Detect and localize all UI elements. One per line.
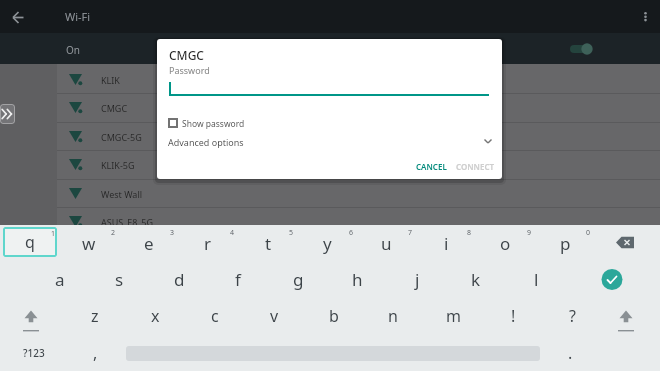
staticText: 5	[289, 228, 294, 238]
button[interactable]: n	[366, 297, 420, 334]
staticText: b	[329, 305, 339, 327]
staticText: j	[415, 268, 420, 291]
staticText: KLIK-5G	[101, 159, 135, 171]
button[interactable]: CMGC	[57, 93, 660, 121]
button[interactable]: CANCEL	[409, 157, 453, 176]
button[interactable]: q	[3, 227, 57, 257]
staticText: Wi-Fi	[65, 9, 91, 24]
staticText: z	[91, 305, 99, 327]
button[interactable]	[584, 261, 640, 298]
button[interactable]: c	[188, 297, 242, 334]
staticText: CANCEL	[416, 161, 447, 172]
staticText: e	[144, 232, 154, 255]
button[interactable]: West Wall	[57, 179, 660, 207]
button[interactable]	[598, 225, 656, 261]
button[interactable]: x	[128, 297, 182, 334]
staticText: ?123	[23, 346, 45, 360]
staticText: ?	[569, 305, 576, 327]
staticText: CMGC	[101, 102, 128, 114]
button[interactable]: ASUS_E8_5G	[57, 207, 660, 235]
button[interactable]	[168, 118, 178, 128]
staticText: !	[511, 305, 516, 327]
button[interactable]: e	[122, 225, 176, 261]
staticText: ,	[93, 342, 98, 364]
staticText: Show password	[182, 118, 245, 130]
button[interactable]: k	[449, 261, 503, 298]
button[interactable]: t	[241, 225, 295, 261]
staticText: CONNECT	[456, 161, 495, 172]
button[interactable]: KLIK	[57, 65, 660, 93]
staticText: q	[25, 232, 36, 255]
staticText: u	[381, 232, 392, 255]
button[interactable]: CMGC-5G	[57, 122, 660, 150]
staticText: k	[471, 268, 481, 291]
staticText: 1	[51, 229, 56, 239]
button[interactable]: q	[3, 225, 57, 261]
staticText: CMGC	[169, 47, 204, 63]
staticText: 9	[527, 228, 532, 238]
button[interactable]: r	[181, 225, 235, 261]
staticText: KLIK	[101, 74, 120, 86]
staticText: 3	[170, 228, 175, 238]
staticText: .	[568, 342, 573, 364]
button[interactable]: KLIK-5G	[57, 150, 660, 178]
button[interactable]: f	[211, 261, 265, 298]
button[interactable]: w	[62, 225, 116, 261]
staticText: l	[534, 268, 539, 291]
button[interactable]: a	[33, 261, 87, 298]
staticText: r	[204, 232, 212, 255]
button[interactable]: h	[330, 261, 384, 298]
button[interactable]: m	[426, 297, 480, 334]
staticText: c	[211, 305, 219, 327]
staticText: w	[82, 232, 96, 255]
staticText: CMGC-5G	[101, 131, 142, 143]
staticText: s	[115, 268, 124, 291]
button[interactable]	[566, 40, 596, 58]
staticText: n	[388, 305, 398, 327]
button[interactable]	[0, 104, 15, 124]
button[interactable]: z	[68, 297, 122, 334]
button[interactable]: s	[92, 261, 146, 298]
staticText: 6	[349, 228, 354, 238]
button[interactable]: b	[307, 297, 361, 334]
staticText: h	[352, 268, 363, 291]
button[interactable]: ?123	[6, 334, 61, 371]
button[interactable]: d	[152, 261, 206, 298]
button[interactable]: .	[543, 334, 597, 371]
staticText: q	[25, 231, 35, 253]
button[interactable]: y	[300, 225, 354, 261]
button[interactable]: Advanced options	[157, 134, 502, 152]
button[interactable]: o	[478, 225, 532, 261]
staticText: v	[270, 305, 279, 327]
staticText: i	[444, 232, 449, 255]
button[interactable]: l	[509, 261, 563, 298]
button[interactable]: g	[271, 261, 325, 298]
button[interactable]: CONNECT	[453, 157, 497, 176]
staticText: o	[500, 232, 511, 255]
staticText: On	[66, 43, 80, 57]
button[interactable]: !	[486, 297, 540, 334]
button[interactable]: p	[538, 225, 592, 261]
staticText: Advanced options	[168, 136, 244, 148]
staticText: 4	[230, 228, 235, 238]
button[interactable]	[3, 297, 59, 334]
button[interactable]	[7, 4, 31, 30]
staticText: 0	[586, 228, 591, 238]
button[interactable]: ,	[68, 334, 122, 371]
button[interactable]: ?	[545, 297, 599, 334]
staticText: West Wall	[101, 188, 143, 200]
button[interactable]	[635, 4, 656, 30]
staticText: y	[323, 232, 332, 255]
staticText: a	[55, 268, 65, 291]
button[interactable]: v	[247, 297, 301, 334]
staticText: p	[560, 232, 571, 255]
button[interactable]: i	[419, 225, 473, 261]
button[interactable]: j	[390, 261, 444, 298]
staticText: d	[174, 268, 185, 291]
staticText: 2	[111, 228, 116, 238]
button[interactable]: u	[359, 225, 413, 261]
button[interactable]	[598, 297, 654, 334]
button[interactable]	[0, 33, 660, 64]
staticText: 7	[408, 228, 413, 238]
